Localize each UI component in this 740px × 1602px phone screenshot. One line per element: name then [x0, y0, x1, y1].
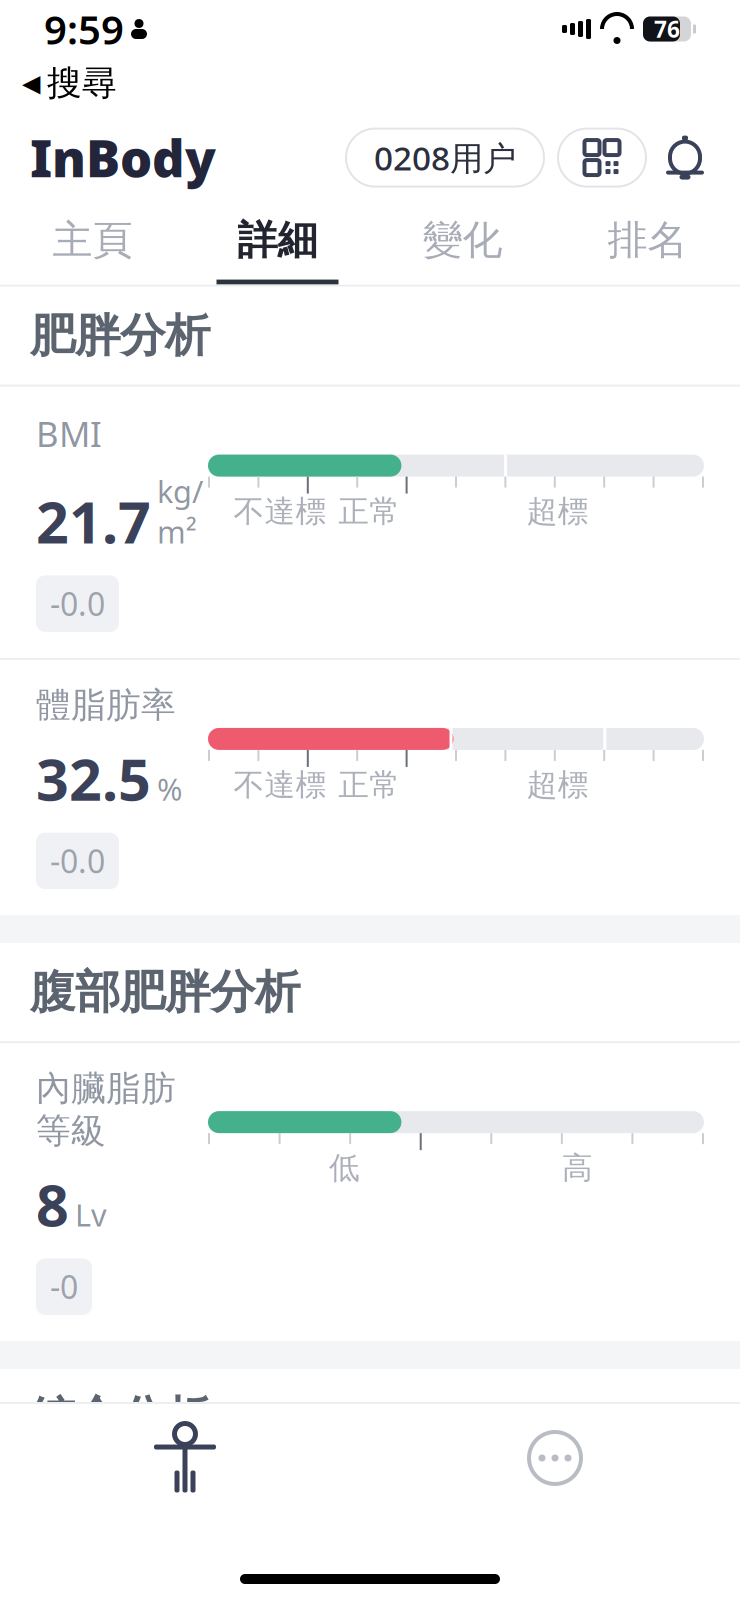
staticText: 21.7: [36, 483, 151, 559]
button[interactable]: 變化: [370, 201, 555, 285]
staticText: 排名: [607, 215, 687, 265]
button[interactable]: 體脂肪率: [0, 658, 740, 915]
staticText: -0.0: [50, 582, 105, 625]
button[interactable]: ◀: [0, 58, 139, 109]
button[interactable]: 內臟脂肪等級: [0, 1041, 740, 1341]
staticText: ◀: [22, 70, 40, 97]
staticText: 76: [654, 14, 680, 44]
staticText: BMI: [36, 411, 102, 457]
staticText: 高: [562, 1149, 593, 1187]
staticText: 不達標: [233, 493, 326, 530]
staticText: 8: [36, 1166, 69, 1242]
button[interactable]: QR code scanner: [558, 129, 646, 187]
staticText: 低: [329, 1149, 360, 1187]
staticText: %: [157, 769, 182, 809]
button[interactable]: 主頁: [0, 201, 185, 285]
staticText: kg/m²: [157, 471, 203, 552]
button[interactable]: BMI: [0, 385, 740, 658]
button[interactable]: 0208用户: [346, 129, 544, 187]
staticText: 內臟脂肪等級: [36, 1067, 176, 1152]
staticText: 32.5: [36, 740, 151, 817]
staticText: 搜尋: [47, 62, 117, 105]
button[interactable]: 基礎代謝率: [0, 1467, 740, 1602]
staticText: 正常: [338, 766, 400, 804]
staticText: 0208用户: [374, 135, 516, 180]
staticText: 綜合分析: [30, 1390, 210, 1446]
button[interactable]: 詳細: [185, 201, 370, 285]
staticText: -0: [50, 1265, 78, 1308]
staticText: 腹部肥胖分析: [30, 964, 300, 1020]
staticText: 體脂肪率: [36, 684, 176, 726]
staticText: 不達標: [233, 766, 326, 804]
staticText: 9:59: [44, 2, 124, 55]
button[interactable]: More: [370, 1404, 740, 1512]
staticText: 詳細: [237, 215, 317, 265]
staticText: 肥胖分析: [30, 308, 210, 363]
button[interactable]: Body composition: [0, 1404, 370, 1512]
staticText: Lv: [75, 1194, 107, 1235]
staticText: InBody: [30, 124, 216, 191]
button[interactable]: Notifications: [660, 129, 710, 187]
staticText: 變化: [422, 215, 502, 265]
staticText: 正常: [338, 493, 400, 530]
staticText: 主頁: [52, 215, 132, 265]
staticText: 超標: [527, 766, 589, 804]
staticText: -0.0: [50, 840, 105, 882]
staticText: 超標: [527, 493, 589, 530]
button[interactable]: 排名: [555, 201, 740, 285]
